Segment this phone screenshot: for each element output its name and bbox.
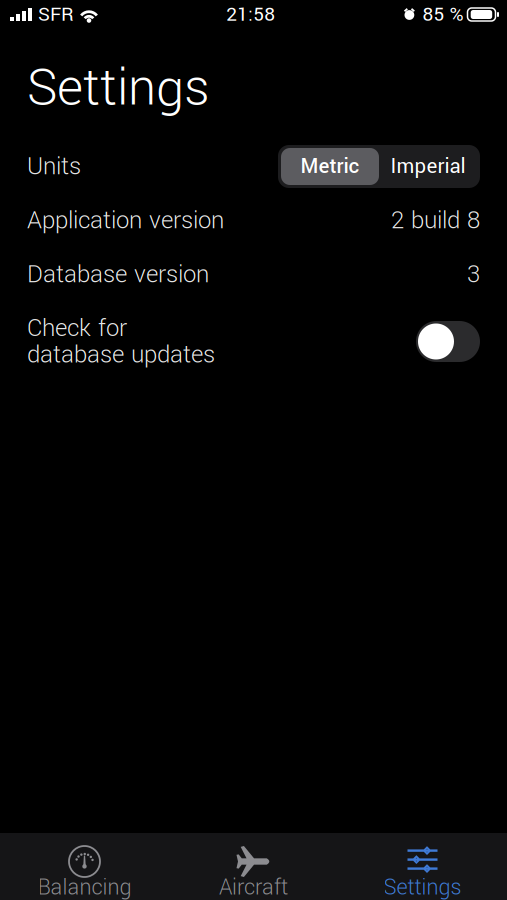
button[interactable]: Imperial (379, 148, 477, 185)
staticText: 3 (467, 257, 480, 292)
staticText: Settings (383, 872, 461, 900)
staticText: 21:58 (226, 1, 275, 28)
staticText: Application version (27, 203, 224, 238)
staticText: SFR (38, 1, 74, 28)
staticText: Balancing (37, 872, 131, 900)
button[interactable]: Metric (281, 148, 379, 185)
staticText: Check for (27, 311, 127, 345)
staticText: Settings (27, 52, 210, 125)
staticText: Aircraft (219, 872, 288, 900)
button[interactable]: Check for database updates (416, 321, 480, 362)
staticText: Imperial (390, 152, 465, 181)
staticText: Metric (300, 152, 359, 181)
staticText: Database version (27, 257, 209, 292)
button[interactable]: Settings (338, 833, 507, 900)
staticText: Units (27, 149, 81, 184)
button[interactable]: Balancing (0, 833, 169, 900)
staticText: 85 % (422, 1, 463, 28)
staticText: 2 build 8 (391, 203, 480, 238)
staticText: database updates (27, 337, 215, 372)
button[interactable]: Aircraft (169, 833, 338, 900)
